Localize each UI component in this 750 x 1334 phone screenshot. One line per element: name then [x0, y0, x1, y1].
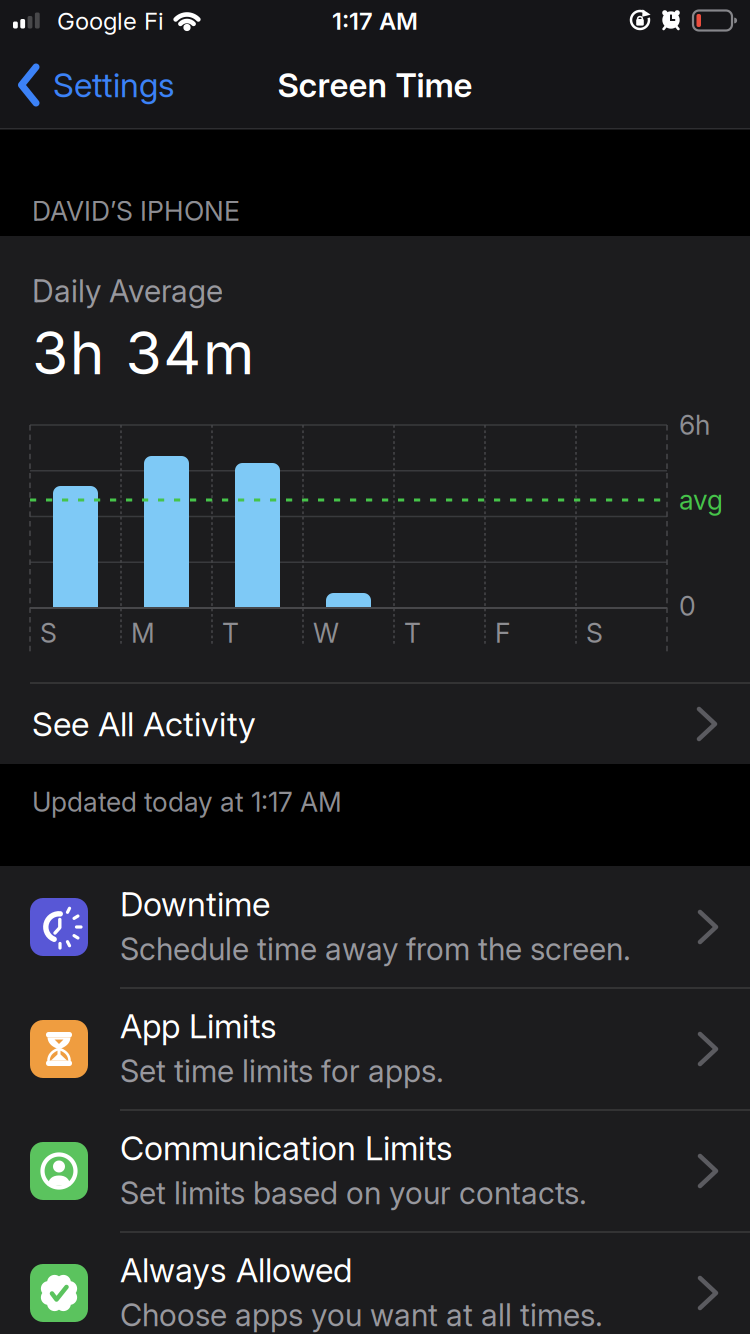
staticText: Communication Limits [120, 1128, 453, 1168]
button[interactable]: Settings [18, 47, 298, 123]
staticText: Updated today at 1:17 AM [32, 786, 342, 818]
button[interactable]: Communication Limits [0, 1110, 750, 1232]
staticText: 1:17 AM [332, 7, 418, 35]
staticText: Google Fi [57, 7, 164, 35]
staticText: App Limits [120, 1006, 277, 1046]
staticText: See All Activity [32, 704, 256, 744]
button[interactable]: See All Activity [0, 684, 750, 764]
staticText: Screen Time [277, 65, 472, 105]
staticText: Set limits based on your contacts. [120, 1175, 587, 1211]
staticText: 3h 34m [32, 318, 254, 388]
staticText: W [313, 617, 339, 649]
staticText: S [586, 617, 603, 649]
staticText: Always Allowed [120, 1250, 352, 1290]
staticText: Settings [53, 65, 175, 105]
staticText: Choose apps you want at all times. [120, 1297, 603, 1333]
staticText: Set time limits for apps. [120, 1053, 444, 1089]
staticText: 6h [679, 409, 710, 441]
staticText: Downtime [120, 884, 270, 924]
button[interactable]: Downtime [0, 866, 750, 988]
staticText: Daily Average [32, 273, 223, 309]
staticText: F [495, 617, 510, 649]
staticText: S [40, 617, 57, 649]
staticText: T [222, 617, 239, 649]
staticText: avg [679, 484, 723, 516]
button[interactable]: App Limits [0, 988, 750, 1110]
staticText: 0 [679, 590, 696, 622]
button[interactable]: Always Allowed [0, 1232, 750, 1334]
staticText: DAVID’S IPHONE [32, 195, 240, 227]
staticText: Schedule time away from the screen. [120, 931, 631, 967]
staticText: T [404, 617, 421, 649]
staticText: M [131, 617, 155, 649]
